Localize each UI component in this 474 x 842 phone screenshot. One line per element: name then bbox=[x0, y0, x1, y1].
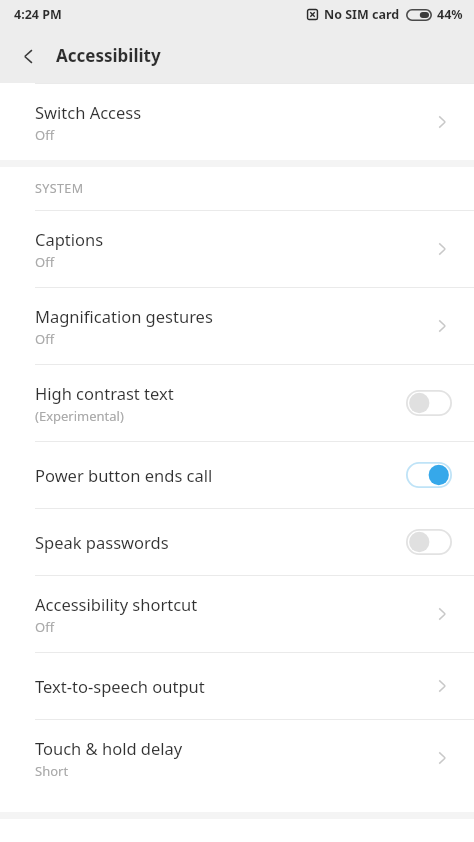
staticText: Touch & hold delay bbox=[35, 737, 183, 759]
staticText: Accessibility shortcut bbox=[35, 593, 198, 615]
staticText: Captions bbox=[35, 228, 104, 250]
staticText: Off bbox=[35, 618, 55, 636]
button[interactable]: Switch Access bbox=[0, 84, 474, 160]
staticText: No SIM card bbox=[324, 6, 400, 23]
staticText: Off bbox=[35, 330, 55, 348]
staticText: Text-to-speech output bbox=[35, 675, 205, 697]
staticText: Magnification gestures bbox=[35, 305, 213, 327]
button[interactable]: Toggle off bbox=[406, 390, 452, 416]
staticText: Speak passwords bbox=[35, 531, 169, 553]
button[interactable]: Power button ends call bbox=[0, 442, 474, 508]
staticText: Accessibility bbox=[56, 44, 161, 67]
button[interactable]: High contrast text bbox=[0, 365, 474, 441]
staticText: 4:24 PM bbox=[14, 6, 62, 23]
staticText: 44% bbox=[437, 6, 463, 23]
button[interactable]: Magnification gestures bbox=[0, 288, 474, 364]
button[interactable]: Touch & hold delay bbox=[0, 720, 474, 796]
staticText: Off bbox=[35, 126, 55, 144]
staticText: Power button ends call bbox=[35, 464, 213, 486]
staticText: Off bbox=[35, 253, 55, 271]
button[interactable]: Captions bbox=[0, 211, 474, 287]
staticText: Short bbox=[35, 762, 69, 780]
staticText: High contrast text bbox=[35, 382, 174, 404]
staticText: (Experimental) bbox=[35, 407, 124, 425]
button[interactable]: Accessibility shortcut bbox=[0, 576, 474, 652]
button[interactable]: Toggle off bbox=[406, 529, 452, 555]
staticText: SYSTEM bbox=[35, 180, 84, 197]
button[interactable]: Text-to-speech output bbox=[0, 653, 474, 719]
staticText: Switch Access bbox=[35, 101, 142, 123]
button[interactable]: Toggle on bbox=[406, 462, 452, 488]
button[interactable]: Back bbox=[8, 36, 48, 76]
button[interactable]: Speak passwords bbox=[0, 509, 474, 575]
